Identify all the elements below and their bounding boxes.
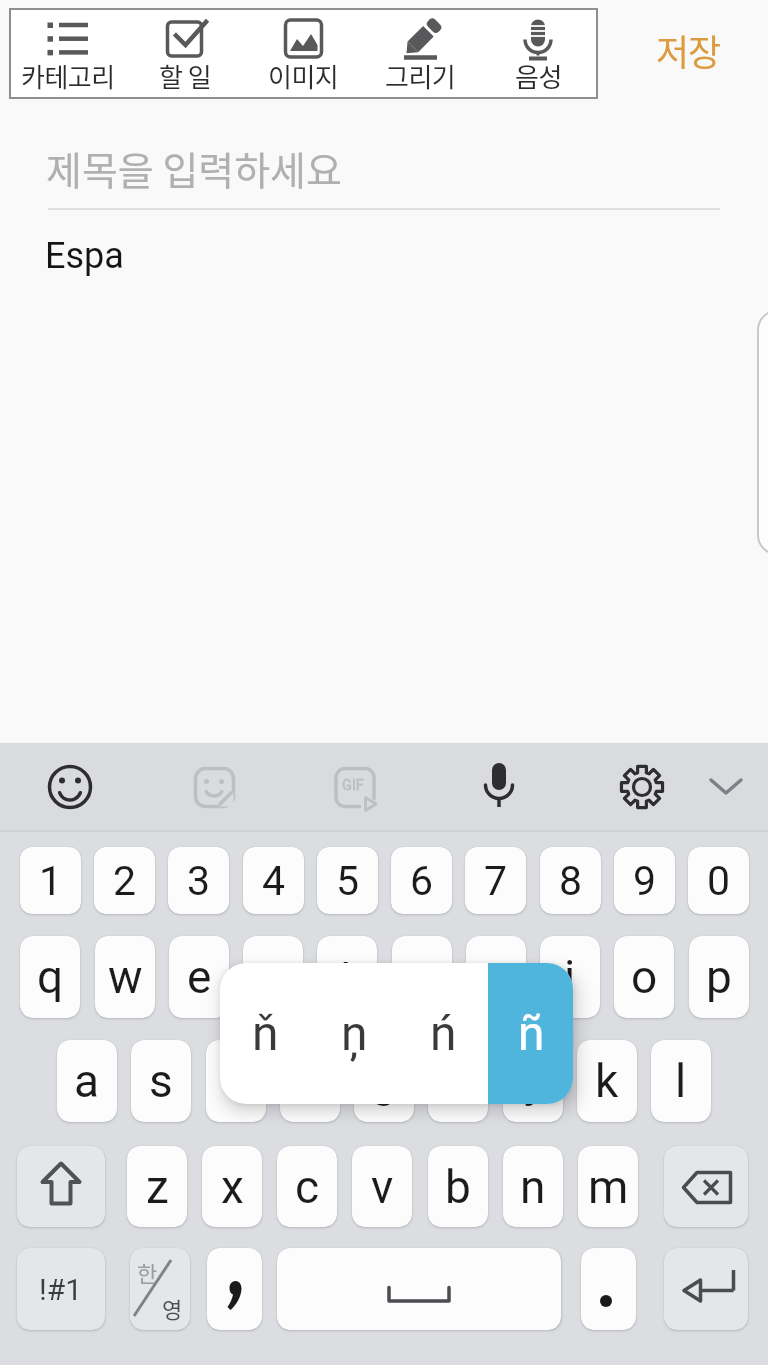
button[interactable] — [130, 1248, 190, 1330]
button[interactable] — [464, 752, 534, 822]
button[interactable]: 6 — [391, 847, 452, 914]
staticText: e — [187, 950, 212, 1004]
staticText: s — [149, 1054, 173, 1108]
button[interactable]: !#1 — [17, 1248, 105, 1330]
staticText: 6 — [410, 857, 434, 905]
staticText: t — [339, 950, 355, 1004]
button[interactable]: o — [614, 936, 674, 1018]
staticText: v — [371, 1160, 394, 1214]
staticText: r — [265, 950, 281, 1004]
staticText: k — [595, 1054, 619, 1108]
button[interactable]: l — [651, 1040, 711, 1122]
button[interactable]: j — [503, 1040, 563, 1122]
button[interactable]: x — [202, 1146, 262, 1227]
staticText: ň — [252, 1005, 279, 1061]
staticText: 저장 — [656, 24, 721, 76]
button[interactable]: c — [277, 1146, 337, 1227]
button[interactable]: w — [95, 936, 155, 1018]
button[interactable]: t — [317, 936, 377, 1018]
button[interactable]: ņ — [314, 983, 394, 1083]
button[interactable]: 9 — [614, 847, 675, 914]
button[interactable]: g — [354, 1040, 414, 1122]
staticText: 영 — [162, 1292, 183, 1322]
staticText: ņ — [341, 1005, 368, 1061]
button[interactable]: 음성 — [480, 9, 597, 98]
staticText: GIF — [342, 777, 364, 794]
button[interactable] — [581, 1248, 636, 1330]
button[interactable]: b — [428, 1146, 488, 1227]
button[interactable] — [17, 1146, 105, 1227]
staticText: 카테고리 — [21, 57, 115, 95]
button[interactable]: 4 — [243, 847, 304, 914]
staticText: 3 — [187, 857, 211, 905]
staticText: 1 — [39, 857, 63, 905]
staticText: 7 — [484, 857, 508, 905]
staticText: o — [631, 950, 658, 1004]
button[interactable] — [664, 1248, 748, 1330]
button[interactable]: 할 일 — [127, 9, 244, 98]
button[interactable]: r — [243, 936, 303, 1018]
staticText: Espa — [45, 235, 124, 277]
staticText: 할 일 — [159, 57, 212, 95]
button[interactable]: 3 — [168, 847, 229, 914]
button[interactable]: u — [466, 936, 526, 1018]
button[interactable]: d — [206, 1040, 266, 1122]
button[interactable] — [35, 752, 105, 822]
button[interactable]: h — [428, 1040, 488, 1122]
button[interactable]: q — [20, 936, 80, 1018]
staticText: ñ — [518, 1005, 545, 1061]
button[interactable]: 카테고리 — [9, 9, 126, 98]
button[interactable]: f — [280, 1040, 340, 1122]
button[interactable] — [488, 963, 573, 1104]
button[interactable] — [207, 1248, 262, 1330]
staticText: 2 — [113, 857, 137, 905]
staticText: p — [706, 950, 732, 1004]
button[interactable]: a — [57, 1040, 117, 1122]
staticText: g — [371, 1054, 397, 1108]
staticText: c — [295, 1160, 320, 1214]
button[interactable]: z — [127, 1146, 187, 1227]
button[interactable]: p — [689, 936, 749, 1018]
button[interactable]: 저장 — [633, 20, 743, 80]
button[interactable]: e — [169, 936, 229, 1018]
button[interactable]: 7 — [465, 847, 526, 914]
button[interactable]: 그리기 — [362, 9, 479, 98]
button[interactable]: 8 — [540, 847, 601, 914]
staticText: 제목을 입력하세요 — [46, 140, 342, 196]
button[interactable]: 5 — [317, 847, 378, 914]
button[interactable]: v — [352, 1146, 412, 1227]
button[interactable]: 이미지 — [245, 9, 362, 98]
button[interactable]: n — [503, 1146, 563, 1227]
staticText: h — [445, 1054, 471, 1108]
staticText: n — [520, 1160, 546, 1214]
button[interactable] — [179, 752, 249, 822]
staticText: z — [146, 1160, 169, 1214]
staticText: w — [108, 950, 143, 1004]
button[interactable] — [320, 752, 390, 822]
button[interactable]: k — [577, 1040, 637, 1122]
button[interactable]: 2 — [94, 847, 155, 914]
button[interactable]: s — [131, 1040, 191, 1122]
button[interactable]: 1 — [20, 847, 81, 914]
button[interactable]: ń — [403, 983, 483, 1083]
staticText: f — [302, 1054, 318, 1108]
button[interactable]: m — [578, 1146, 638, 1227]
button[interactable]: i — [540, 936, 600, 1018]
staticText: x — [221, 1160, 244, 1214]
staticText: q — [37, 950, 64, 1004]
staticText: 0 — [707, 857, 731, 905]
button[interactable]: ň — [225, 983, 305, 1083]
staticText: m — [588, 1160, 629, 1214]
staticText: b — [445, 1160, 471, 1214]
button[interactable] — [664, 1146, 748, 1227]
staticText: !#1 — [39, 1272, 83, 1307]
staticText: l — [675, 1054, 687, 1108]
staticText: d — [223, 1054, 249, 1108]
button[interactable]: y — [392, 936, 452, 1018]
button[interactable] — [277, 1248, 561, 1330]
staticText: 그리기 — [385, 57, 456, 95]
button[interactable] — [691, 752, 761, 822]
button[interactable]: 0 — [688, 847, 749, 914]
button[interactable] — [757, 310, 768, 555]
button[interactable] — [607, 752, 677, 822]
